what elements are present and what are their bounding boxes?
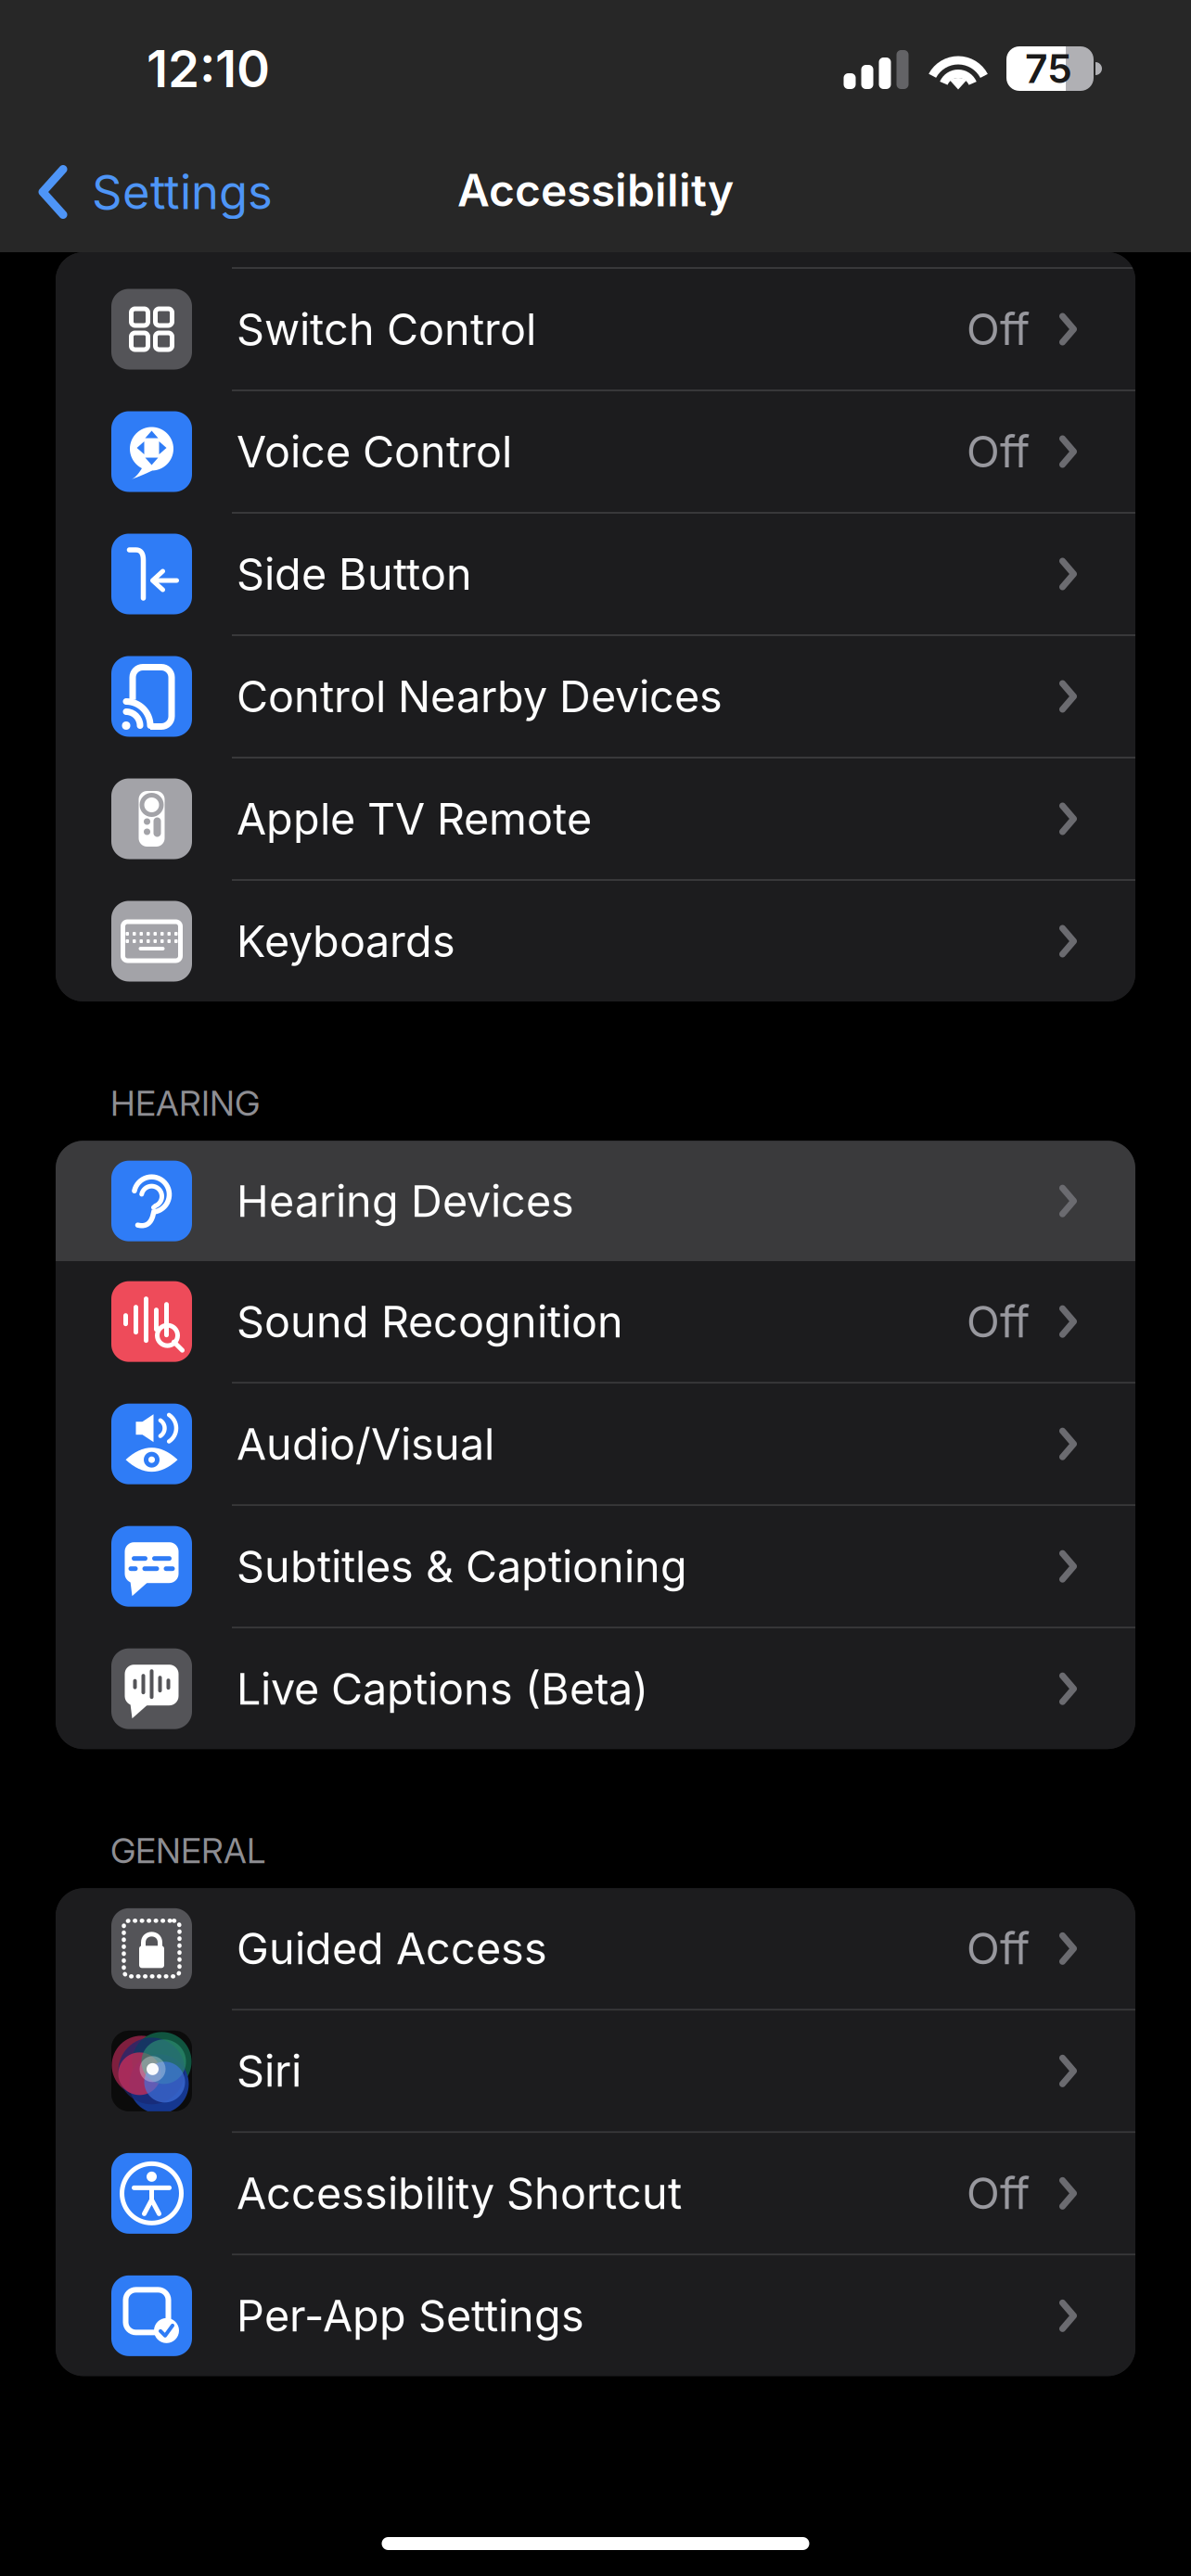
staticText: Off [967, 1295, 1030, 1348]
staticText: Off [967, 425, 1030, 478]
staticText: 75 [1025, 45, 1072, 93]
staticText: Per-App Settings [237, 2290, 584, 2342]
button[interactable]: Live Captions (Beta) [56, 1628, 1135, 1749]
button[interactable]: Keyboards [56, 881, 1135, 1001]
staticText: Hearing Devices [237, 1175, 574, 1227]
staticText: Switch Control [237, 303, 536, 355]
staticText: Accessibility Shortcut [237, 2167, 682, 2220]
staticText: Sound Recognition [237, 1295, 623, 1348]
button[interactable]: Accessibility Shortcut [56, 2133, 1135, 2255]
staticText: Off [967, 1922, 1030, 1975]
staticText: Keyboards [237, 915, 455, 967]
staticText: GENERAL [110, 1830, 265, 1872]
button[interactable]: Apple TV Remote [56, 759, 1135, 881]
staticText: Voice Control [237, 425, 512, 478]
staticText: Side Button [237, 548, 472, 600]
button[interactable]: Per-App Settings [56, 2255, 1135, 2376]
button[interactable]: Settings [0, 141, 291, 243]
button[interactable]: Guided Access [56, 1888, 1135, 2011]
button[interactable]: Switch Control [56, 269, 1135, 391]
button[interactable]: Side Button [56, 514, 1135, 636]
button[interactable]: Audio/Visual [56, 1384, 1135, 1506]
staticText: Off [967, 2167, 1030, 2220]
button[interactable]: Sound Recognition [56, 1261, 1135, 1384]
staticText: Subtitles & Captioning [237, 1540, 687, 1593]
button[interactable]: Voice Control [56, 391, 1135, 514]
button[interactable]: Siri [56, 2011, 1135, 2133]
staticText: Apple TV Remote [237, 793, 592, 845]
staticText: Audio/Visual [237, 1418, 494, 1470]
staticText: Control Nearby Devices [237, 670, 723, 723]
staticText: Siri [237, 2045, 301, 2097]
staticText: Accessibility [457, 163, 734, 217]
staticText: HEARING [110, 1082, 260, 1124]
button[interactable]: Subtitles & Captioning [56, 1506, 1135, 1628]
staticText: 12:10 [147, 38, 270, 99]
staticText: Settings [92, 163, 273, 220]
button[interactable]: Hearing Devices [56, 1141, 1135, 1261]
staticText: Guided Access [237, 1922, 547, 1975]
button[interactable]: Control Nearby Devices [56, 636, 1135, 759]
staticText: Off [967, 303, 1030, 355]
staticText: Live Captions (Beta) [237, 1663, 648, 1715]
